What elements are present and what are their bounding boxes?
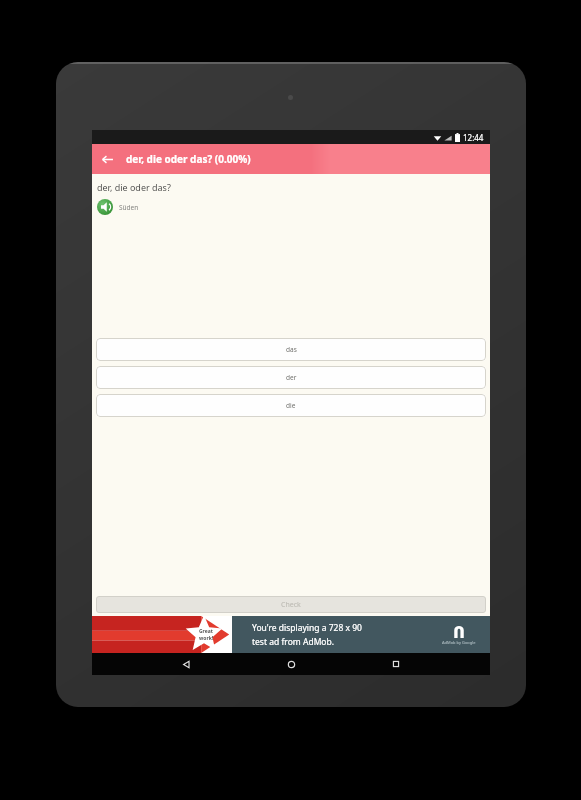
button[interactable]: Play audio bbox=[97, 199, 139, 215]
button[interactable]: Check bbox=[96, 596, 486, 613]
button[interactable]: die bbox=[96, 394, 486, 417]
staticText: AdMob by Google bbox=[442, 640, 476, 645]
staticText: der, die oder das? (0.00%) bbox=[126, 152, 251, 166]
staticText: work! bbox=[199, 635, 214, 642]
staticText: Check bbox=[281, 600, 301, 610]
staticText: 12:44 bbox=[463, 132, 484, 143]
button[interactable]: der bbox=[96, 366, 486, 389]
button[interactable]: Recent apps bbox=[385, 653, 407, 675]
other: Play audio bbox=[97, 199, 113, 215]
staticText: das bbox=[286, 345, 297, 354]
button[interactable]: Back bbox=[92, 144, 122, 174]
staticText: der, die oder das? bbox=[97, 181, 171, 193]
staticText: der bbox=[286, 373, 297, 382]
button[interactable]: Back bbox=[175, 653, 197, 675]
button[interactable]: Home bbox=[280, 653, 302, 675]
staticText: Süden bbox=[119, 203, 139, 212]
staticText: die bbox=[286, 401, 296, 410]
button[interactable]: Advertisement bbox=[92, 616, 490, 653]
staticText: test ad from AdMob. bbox=[252, 636, 335, 648]
staticText: You're displaying a 728 x 90 bbox=[252, 622, 362, 634]
staticText: Great bbox=[199, 628, 213, 635]
button[interactable]: das bbox=[96, 338, 486, 361]
